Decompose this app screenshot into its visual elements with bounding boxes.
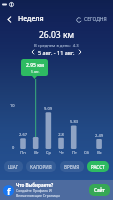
- staticText: 5.83: [70, 119, 78, 124]
- button[interactable]: ШАГ: [4, 161, 23, 172]
- staticText: РАССТ: [91, 164, 105, 169]
- staticText: Вт: [34, 150, 39, 155]
- staticText: 2.8: [58, 132, 64, 137]
- button[interactable]: СЕГОДНЯ: [74, 14, 109, 25]
- staticText: Неделя: [18, 14, 44, 24]
- staticText: Сайт: [94, 187, 105, 193]
- button[interactable]: Previous week: [28, 47, 38, 57]
- staticText: СЕГОДНЯ: [84, 16, 107, 23]
- staticText: Пн: [20, 150, 26, 155]
- button[interactable]: Back: [3, 13, 16, 26]
- staticText: Создайте Профиль И: [16, 188, 52, 193]
- staticText: 2.95 км: [26, 62, 44, 69]
- staticText: Ср: [46, 150, 51, 155]
- staticText: 5 авг. - 11 авг.: [38, 49, 75, 56]
- staticText: 26.03 км: [39, 29, 74, 41]
- staticText: Вс: [97, 150, 102, 155]
- staticText: ВРЕМЯ: [64, 164, 80, 169]
- staticText: ШАГ: [8, 164, 19, 169]
- staticText: Сб: [84, 150, 89, 155]
- staticText: Пт: [72, 150, 77, 155]
- staticText: 2.49: [95, 133, 103, 138]
- staticText: 0: [12, 145, 15, 150]
- staticText: Впечатляющие Страницы: [16, 193, 60, 198]
- staticText: 9.09: [44, 106, 52, 111]
- button[interactable]: РАССТ: [87, 161, 109, 172]
- staticText: КАЛОРИЯ: [30, 164, 52, 169]
- staticText: В среднем в день: 4.3: [34, 43, 79, 49]
- button[interactable]: КАЛОРИЯ: [26, 161, 56, 172]
- staticText: Чт: [59, 150, 64, 155]
- staticText: 5 авг.: [31, 70, 40, 74]
- staticText: 10: [10, 103, 15, 108]
- staticText: Что Выбираете?: [16, 182, 54, 188]
- button[interactable]: ВРЕМЯ: [60, 161, 84, 172]
- button[interactable]: 2.95 км: [21, 59, 48, 76]
- button[interactable]: f: [0, 180, 113, 200]
- button[interactable]: Next week: [75, 47, 85, 57]
- button[interactable]: Сайт: [89, 184, 110, 196]
- staticText: f: [7, 185, 11, 196]
- staticText: 2.67: [19, 132, 27, 137]
